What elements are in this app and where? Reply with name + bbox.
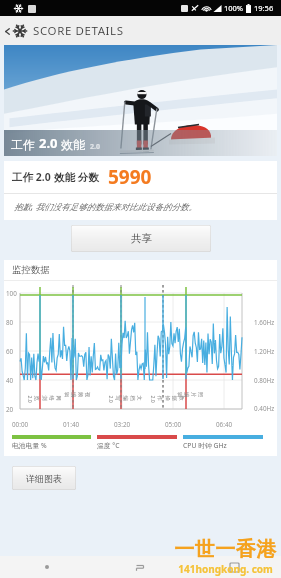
staticText: 数据操作 2.0 — [149, 395, 184, 405]
staticText: 100 — [6, 289, 17, 298]
button[interactable]: Back — [93, 556, 187, 578]
button[interactable]: 工作 — [4, 45, 277, 156]
staticText: 照片编辑 — [176, 392, 204, 402]
staticText: 共享 — [131, 232, 152, 245]
staticText: 20 — [6, 405, 14, 414]
staticText: 监控数据 — [12, 264, 50, 276]
staticText: 网络浏览 2.0 — [26, 395, 61, 405]
button[interactable]: Back — [2, 24, 13, 39]
staticText: 05:00 — [165, 420, 182, 429]
button[interactable]: 共享 — [71, 225, 211, 252]
staticText: 效能 — [58, 136, 86, 152]
staticText: 0.40Hz — [254, 404, 275, 413]
staticText: 2.0 — [90, 142, 100, 152]
staticText: 电池电量 % — [12, 441, 47, 450]
staticText: 工作 — [11, 136, 39, 152]
staticText: 温度 °C — [97, 441, 120, 450]
staticText: SCORE DETAILS — [33, 23, 124, 39]
staticText: 详细图表 — [26, 473, 62, 484]
staticText: 00:00 — [12, 420, 29, 429]
staticText: 141hongkong. com — [178, 562, 273, 576]
staticText: 视频编辑 — [63, 392, 91, 402]
staticText: 06:40 — [216, 420, 233, 429]
staticText: 100% — [224, 3, 244, 13]
button[interactable]: Home — [187, 556, 281, 578]
staticText: 01:40 — [63, 420, 80, 429]
staticText: 效能 — [54, 171, 75, 184]
staticText: 抱歉, 我们没有足够的数据来对比此设备的分数。 — [14, 201, 197, 213]
staticText: 文档编写 2.0 — [107, 395, 142, 405]
staticText: 一世一香港 — [174, 537, 277, 562]
staticText: 19:56 — [254, 3, 274, 13]
staticText: 2.0 — [39, 134, 58, 152]
staticText: 60 — [6, 347, 14, 356]
staticText: 1.20Hz — [254, 347, 275, 356]
staticText: 03:20 — [114, 420, 131, 429]
staticText: 工作 — [12, 171, 33, 184]
staticText: 40 — [6, 376, 14, 385]
button[interactable]: 详细图表 — [12, 466, 76, 490]
staticText: 5990 — [108, 164, 152, 190]
staticText: 80 — [6, 318, 14, 327]
staticText: 分数 — [75, 170, 99, 184]
staticText: CPU 时钟 GHz — [183, 441, 227, 450]
staticText: 0.80Hz — [254, 376, 275, 385]
staticText: 2.0 — [33, 170, 54, 184]
staticText: 1.60Hz — [254, 318, 275, 327]
button[interactable]: Recent apps — [0, 556, 93, 578]
